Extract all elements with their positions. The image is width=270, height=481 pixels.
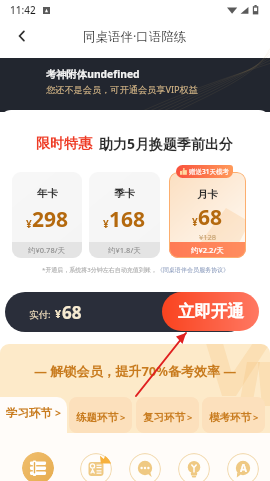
staticText: 《同桌语伴会员服务协议》 xyxy=(157,266,229,274)
button[interactable]: 年卡 xyxy=(12,172,82,258)
button[interactable]: 季卡 xyxy=(89,172,160,258)
button[interactable]: 学习环节 xyxy=(22,452,54,481)
button[interactable]: Back xyxy=(9,23,35,49)
staticText: 学习环节 xyxy=(6,406,52,420)
button[interactable]: 模考环节 xyxy=(202,397,265,433)
staticText: ¥128 xyxy=(199,232,217,242)
staticText: 季卡 xyxy=(114,187,135,200)
staticText: ¥ xyxy=(55,307,62,321)
staticText: 练题环节 xyxy=(76,411,118,424)
staticText: ¥ xyxy=(192,215,198,229)
staticText: 168 xyxy=(109,205,146,234)
staticText: 298 xyxy=(32,205,69,234)
staticText: 您还不是会员，可开通会员享VIP权益 xyxy=(46,83,198,96)
button[interactable]: 消息 xyxy=(129,453,161,481)
staticText: 68 xyxy=(198,203,223,232)
button[interactable]: 练题环节 xyxy=(69,397,132,433)
staticText: > xyxy=(55,406,62,420)
staticText: 11:42 xyxy=(10,3,36,17)
button[interactable]: 立即开通 xyxy=(162,292,259,331)
button[interactable]: 提示 xyxy=(178,453,210,481)
staticText: ¥ xyxy=(103,217,109,231)
staticText: 约¥0.78/天 xyxy=(28,245,66,255)
staticText: 立即开通 xyxy=(178,301,244,322)
staticText: *开通后，系统将3分钟左右自动充值到账， xyxy=(42,266,157,274)
staticText: 同桌语伴·口语陪练 xyxy=(83,28,187,45)
staticText: ¥ xyxy=(26,217,32,231)
staticText: > xyxy=(120,411,126,424)
button[interactable]: 学习环节 xyxy=(0,397,67,481)
staticText: 约¥2.2/天 xyxy=(191,245,224,255)
staticText: > xyxy=(187,411,193,424)
staticText: 年卡 xyxy=(37,187,58,200)
staticText: 68 xyxy=(62,301,82,324)
staticText: 实付: xyxy=(29,308,51,321)
staticText: A xyxy=(240,461,247,475)
staticText: > xyxy=(253,411,259,424)
button[interactable]: 练题环节 xyxy=(80,453,112,481)
staticText: 赠送31天模考 xyxy=(189,167,229,176)
staticText: 考神附体undefined xyxy=(46,67,140,81)
staticText: 限时特惠 xyxy=(36,135,92,153)
button[interactable]: 答疑 xyxy=(227,453,259,481)
staticText: 复习环节 xyxy=(143,411,185,424)
staticText: 模考环节 xyxy=(209,411,251,424)
button[interactable]: 月卡 xyxy=(169,172,246,258)
staticText: 月卡 xyxy=(197,188,218,201)
button[interactable]: 复习环节 xyxy=(136,397,199,433)
staticText: — 解锁会员，提升70%备考效率 — xyxy=(34,362,237,380)
staticText: 约¥1.8/天 xyxy=(108,245,141,255)
staticText: 助力5月换题季前出分 xyxy=(99,134,234,153)
